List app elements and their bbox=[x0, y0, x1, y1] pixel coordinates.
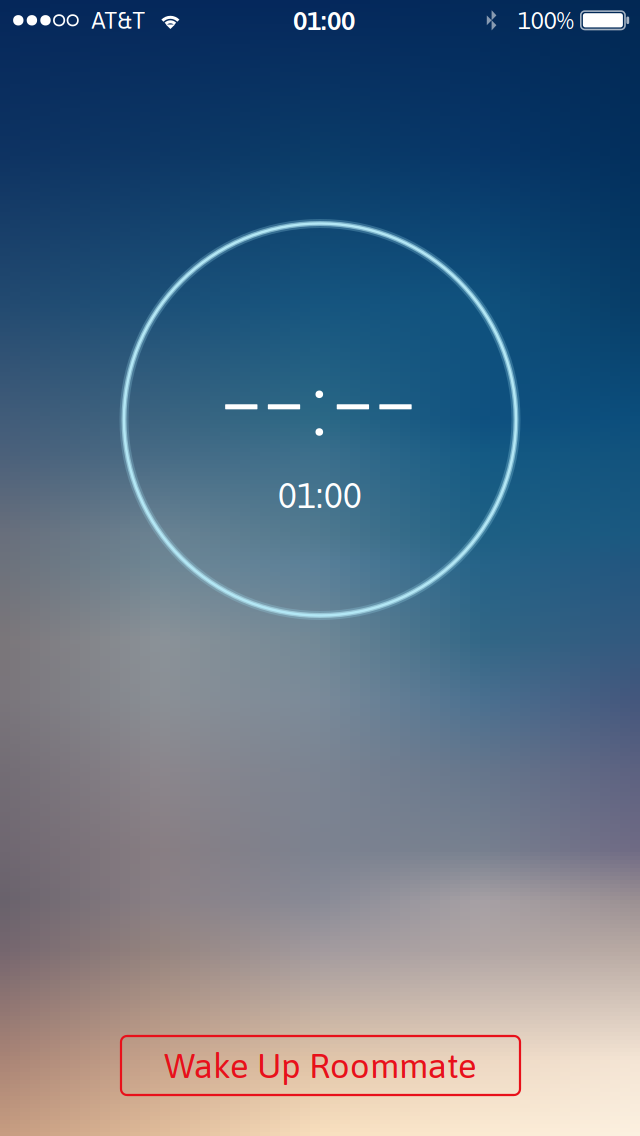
staticText: 01:00 bbox=[278, 475, 362, 515]
staticText: AT&T bbox=[91, 7, 145, 34]
staticText: Wake Up Roommate bbox=[164, 1046, 477, 1085]
button[interactable]: Wake Up Roommate bbox=[121, 1036, 520, 1095]
staticText: 100% bbox=[518, 6, 574, 34]
staticText: 01:00 bbox=[293, 5, 355, 36]
